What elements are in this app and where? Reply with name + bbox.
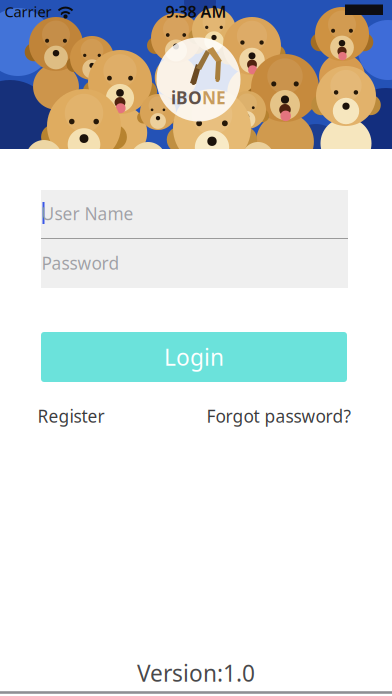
button[interactable]: Forgot password? <box>206 404 351 427</box>
staticText: Carrier <box>4 2 51 21</box>
staticText: Forgot password? <box>206 404 351 427</box>
staticText: iBO <box>171 86 202 109</box>
staticText: Password <box>41 251 119 274</box>
staticText: 9:38 AM <box>165 1 226 22</box>
staticText: NE <box>202 86 226 109</box>
staticText: Login <box>164 342 224 372</box>
button[interactable]: Register <box>37 404 104 427</box>
staticText: User Name <box>41 202 133 225</box>
staticText: Register <box>37 404 104 427</box>
button[interactable]: Login <box>41 332 347 382</box>
staticText: Version:1.0 <box>137 658 255 688</box>
